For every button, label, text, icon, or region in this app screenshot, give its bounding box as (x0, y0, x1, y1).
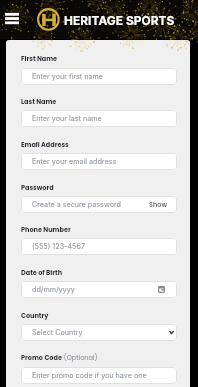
staticText: Promo Code (21, 353, 62, 362)
button[interactable]: Enter promo code if you have one (21, 367, 177, 384)
staticText: (555) 123-4567 (32, 242, 167, 251)
staticText: Enter your email address (32, 157, 167, 166)
staticText: First Name (21, 54, 58, 63)
button[interactable]: Enter your last name (21, 110, 177, 127)
staticText: Country (21, 311, 49, 320)
button[interactable]: Create a secure password (21, 196, 177, 213)
staticText: Enter your last name (32, 114, 167, 123)
staticText: Password (21, 183, 54, 192)
button[interactable]: (555) 123-4567 (21, 238, 177, 255)
button[interactable]: Open country list (169, 331, 174, 334)
staticText: Phone Number (21, 225, 71, 234)
button[interactable]: Open navigation menu (2, 9, 22, 29)
button[interactable]: Show (149, 200, 167, 209)
staticText: dd/mm/yyyy (32, 285, 158, 294)
staticText: Date of Birth (21, 268, 63, 277)
staticText: Create a secure password (32, 200, 149, 209)
staticText: Enter promo code if you have one (32, 371, 167, 380)
staticText: Last Name (21, 97, 57, 106)
staticText: Enter your first name (32, 72, 167, 81)
button[interactable]: Enter your first name (21, 68, 177, 85)
staticText: (Optional) (62, 353, 98, 362)
button[interactable]: Select Country (21, 324, 177, 341)
button[interactable]: Enter your email address (21, 153, 177, 170)
button[interactable]: Pick date (158, 286, 165, 293)
button[interactable]: dd/mm/yyyy (21, 281, 177, 298)
staticText: Select Country (32, 328, 169, 337)
staticText: Email Address (21, 140, 69, 149)
staticText: HERITAGE SPORTS (64, 13, 175, 27)
